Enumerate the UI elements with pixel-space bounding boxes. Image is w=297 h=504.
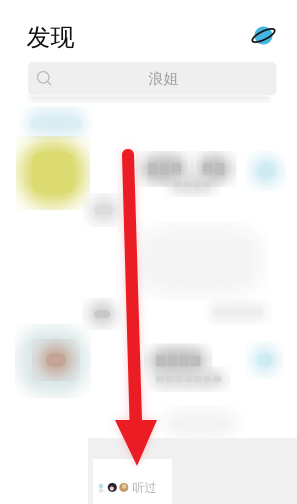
button[interactable]: Planet: [249, 22, 277, 48]
staticText: 发现: [26, 23, 74, 52]
staticText: 听过: [132, 480, 156, 495]
staticText: 浪姐: [148, 70, 178, 88]
button[interactable]: 浪姐: [28, 62, 276, 95]
button[interactable]: 听过: [94, 476, 160, 498]
